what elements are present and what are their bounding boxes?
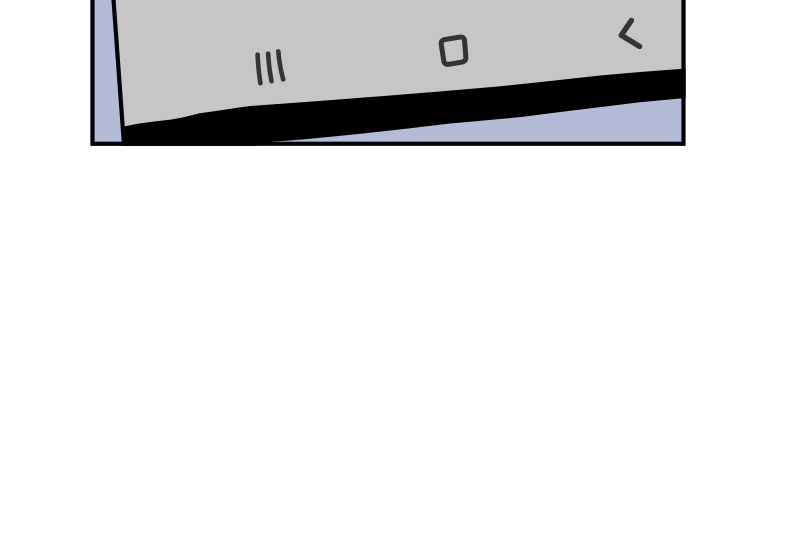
- button[interactable]: Recent apps: [0, 0, 800, 560]
- button[interactable]: Home: [0, 0, 800, 560]
- button[interactable]: Back: [0, 0, 800, 560]
